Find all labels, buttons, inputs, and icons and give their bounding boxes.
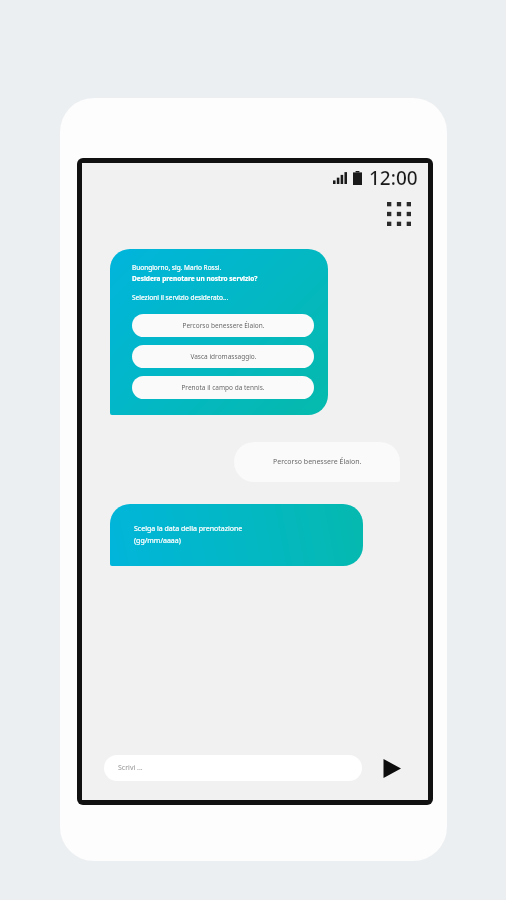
button[interactable]: Apps menu <box>382 197 416 231</box>
button[interactable]: Vasca idromassaggio. <box>132 345 314 368</box>
staticText: Percorso benessere Élaion. <box>273 457 362 467</box>
staticText: 12:00 <box>369 165 418 191</box>
staticText: Scelga la data della prenotazione <box>134 524 243 534</box>
button[interactable]: Scrivi ... <box>104 755 362 781</box>
staticText: Prenota il campo da tennis. <box>181 383 265 392</box>
staticText: Percorso benessere Élaion. <box>182 321 265 330</box>
button[interactable]: Percorso benessere Élaion. <box>132 314 314 337</box>
button[interactable]: Prenota il campo da tennis. <box>132 376 314 399</box>
staticText: Scrivi ... <box>118 763 143 773</box>
button[interactable]: Send <box>376 753 406 783</box>
button[interactable]: Percorso benessere Élaion. <box>234 442 400 482</box>
staticText: Desidera prenotare un nostro servizio? <box>132 274 258 283</box>
staticText: Buongiorno, sig. Mario Rossi. <box>132 263 222 272</box>
staticText: (gg/mm/aaaa) <box>134 536 181 546</box>
staticText: Selezioni il servizio desiderato... <box>132 293 229 302</box>
staticText: Vasca idromassaggio. <box>190 352 257 361</box>
